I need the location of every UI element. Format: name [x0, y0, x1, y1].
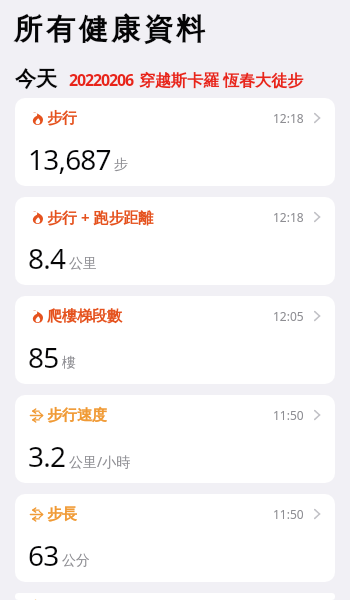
staticText: 今天 — [15, 66, 57, 92]
staticText: 13,687 — [28, 140, 111, 178]
staticText: 12:18 — [273, 110, 304, 126]
staticText: 63 — [28, 536, 59, 574]
staticText: 步 — [114, 156, 128, 174]
staticText: 12:18 — [273, 209, 304, 225]
staticText: 12:05 — [273, 308, 304, 324]
button[interactable]: 步行 + 跑步距離 — [15, 197, 335, 285]
staticText: 穿越斯卡羅 恆春大徒步 — [139, 69, 304, 91]
button[interactable]: 步行速度 — [15, 395, 335, 483]
staticText: 85 — [28, 338, 59, 376]
button[interactable]: 爬樓梯段數 — [15, 296, 335, 384]
staticText: 爬樓梯段數 — [47, 307, 122, 326]
staticText: 步行 + 跑步距離 — [47, 207, 154, 227]
button[interactable]: 步長 — [15, 494, 335, 582]
staticText: 步長 — [47, 505, 77, 524]
staticText: 公里/小時 — [69, 452, 131, 471]
staticText: 11:50 — [273, 407, 304, 423]
button[interactable]: 步行 — [15, 98, 335, 186]
staticText: 公里 — [69, 255, 97, 273]
staticText: 樓 — [62, 354, 76, 372]
staticText: 8.4 — [28, 239, 66, 277]
staticText: 20220206 — [69, 69, 134, 91]
staticText: 所有健康資料 — [12, 11, 207, 48]
staticText: 3.2 — [28, 437, 66, 475]
staticText: 11:50 — [273, 506, 304, 522]
staticText: 步行速度 — [47, 406, 107, 425]
staticText: 步行 — [47, 109, 77, 128]
staticText: 公分 — [62, 552, 90, 570]
